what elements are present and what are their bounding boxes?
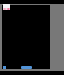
- button[interactable]: [21, 66, 32, 69]
- button[interactable]: [3, 4, 10, 10]
